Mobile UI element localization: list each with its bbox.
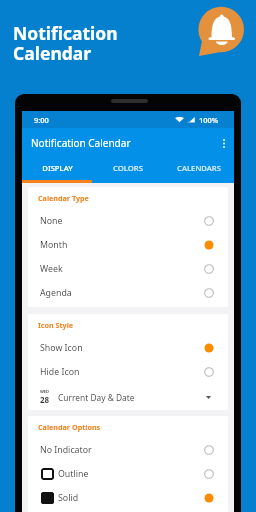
staticText: Week <box>40 263 63 275</box>
button[interactable]: CALENDARS <box>163 157 234 183</box>
button[interactable]: Month <box>28 233 228 257</box>
staticText: Solid <box>58 492 79 504</box>
button[interactable]: Solid <box>28 486 228 510</box>
button[interactable]: Week <box>28 257 228 281</box>
button[interactable]: DISPLAY <box>22 157 92 183</box>
button[interactable]: No Indicator <box>28 438 228 462</box>
button[interactable]: COLORS <box>92 157 163 183</box>
staticText: CALENDARS <box>177 163 221 173</box>
staticText: COLORS <box>113 163 143 173</box>
staticText: Outline <box>58 468 89 480</box>
staticText: WED <box>40 389 50 394</box>
button[interactable]: Show Icon <box>28 336 228 360</box>
staticText: Notification Calendar <box>13 21 118 65</box>
button[interactable]: None <box>28 209 228 233</box>
button[interactable]: Outline <box>28 462 228 486</box>
button[interactable]: Hide Icon <box>28 360 228 384</box>
button[interactable]: Agenda <box>28 281 228 305</box>
staticText: None <box>40 215 63 227</box>
staticText: Icon Style <box>38 320 74 330</box>
staticText: Month <box>40 239 68 251</box>
button[interactable]: More options <box>215 132 232 154</box>
staticText: DISPLAY <box>42 163 73 173</box>
staticText: Hide Icon <box>40 366 80 378</box>
staticText: 100% <box>199 115 219 125</box>
staticText: Agenda <box>40 287 72 299</box>
staticText: No Indicator <box>40 444 92 456</box>
staticText: Calendar Type <box>38 193 89 203</box>
staticText: Notification Calendar <box>31 136 131 150</box>
staticText: Show Icon <box>40 342 83 354</box>
staticText: Current Day & Date <box>58 392 135 403</box>
staticText: 9:00 <box>34 115 49 125</box>
staticText: Calendar Options <box>38 422 101 432</box>
staticText: 28 <box>40 394 50 405</box>
button[interactable]: WED <box>28 384 228 410</box>
